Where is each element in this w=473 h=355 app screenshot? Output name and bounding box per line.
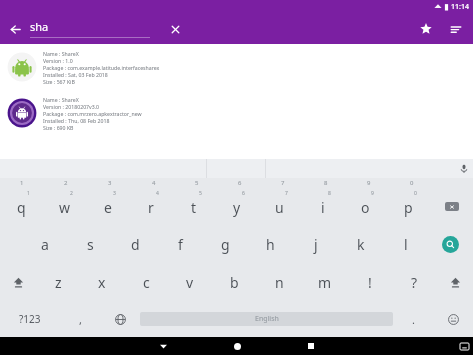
staticText: Size : 567 KiB bbox=[43, 78, 75, 85]
staticText: w bbox=[59, 198, 71, 217]
staticText: 6 bbox=[242, 190, 245, 197]
staticText: ? bbox=[411, 273, 418, 292]
staticText: 1 bbox=[27, 190, 30, 197]
staticText: a bbox=[41, 235, 49, 254]
button[interactable]: x bbox=[80, 263, 124, 301]
staticText: r bbox=[148, 198, 154, 217]
staticText: k bbox=[357, 235, 365, 254]
button[interactable]: v bbox=[168, 263, 212, 301]
button[interactable]: Emoji bbox=[433, 301, 473, 337]
button[interactable]: Search bbox=[428, 225, 473, 263]
button[interactable]: Back bbox=[0, 14, 30, 44]
button[interactable]: Recent apps bbox=[296, 337, 326, 355]
button[interactable]: f bbox=[158, 225, 203, 263]
staticText: 5 bbox=[195, 179, 199, 187]
staticText: z bbox=[55, 273, 62, 292]
staticText: p bbox=[404, 198, 413, 217]
button[interactable]: Favorites bbox=[411, 14, 441, 44]
staticText: 7 bbox=[281, 179, 285, 187]
button[interactable]: l bbox=[383, 225, 428, 263]
button[interactable]: Keyboard layout bbox=[455, 337, 473, 355]
staticText: Name : ShareX bbox=[43, 96, 79, 103]
staticText: 2 bbox=[64, 179, 68, 187]
button[interactable]: Backspace bbox=[430, 188, 473, 225]
staticText: m bbox=[318, 273, 332, 292]
button[interactable]: 7 bbox=[258, 188, 301, 225]
staticText: Version : 20180207v3.0 bbox=[43, 103, 100, 110]
staticText: u bbox=[275, 198, 284, 217]
staticText: 9 bbox=[367, 179, 371, 187]
button[interactable]: z bbox=[36, 263, 80, 301]
staticText: q bbox=[17, 198, 26, 217]
staticText: i bbox=[321, 198, 325, 217]
button[interactable]: a bbox=[22, 225, 68, 263]
button[interactable]: sha bbox=[30, 13, 160, 44]
staticText: , bbox=[79, 312, 82, 327]
button[interactable]: Name : ShareX bbox=[0, 90, 473, 136]
button[interactable]: 1 bbox=[0, 188, 43, 225]
staticText: 5 bbox=[199, 190, 202, 197]
button[interactable]: 3 bbox=[86, 188, 129, 225]
button[interactable]: Change language bbox=[100, 301, 140, 337]
staticText: English bbox=[255, 314, 279, 324]
staticText: v bbox=[186, 273, 194, 292]
button[interactable]: 5 bbox=[172, 188, 215, 225]
staticText: 8 bbox=[328, 190, 331, 197]
staticText: y bbox=[233, 198, 241, 217]
button[interactable]: b bbox=[212, 263, 257, 301]
staticText: x bbox=[98, 273, 106, 292]
button[interactable]: 9 bbox=[344, 188, 387, 225]
button[interactable]: c bbox=[124, 263, 168, 301]
button[interactable]: m bbox=[302, 263, 347, 301]
staticText: b bbox=[230, 273, 239, 292]
staticText: 0 bbox=[414, 190, 417, 197]
button[interactable]: d bbox=[113, 225, 158, 263]
staticText: 4 bbox=[156, 190, 159, 197]
button[interactable]: h bbox=[248, 225, 293, 263]
staticText: s bbox=[87, 235, 94, 254]
staticText: 1 bbox=[20, 179, 24, 187]
button[interactable]: Name : ShareX bbox=[0, 44, 473, 90]
button[interactable]: Shift bbox=[437, 263, 473, 301]
button[interactable]: 8 bbox=[301, 188, 344, 225]
staticText: Name : ShareX bbox=[43, 50, 79, 57]
staticText: c bbox=[143, 273, 150, 292]
button[interactable]: , bbox=[60, 301, 100, 337]
button[interactable]: . bbox=[393, 301, 433, 337]
button[interactable]: Voice input bbox=[454, 159, 473, 178]
staticText: 6 bbox=[238, 179, 242, 187]
staticText: l bbox=[404, 235, 408, 254]
staticText: 11:14 bbox=[451, 2, 469, 12]
button[interactable]: English bbox=[140, 312, 393, 326]
button[interactable]: Home bbox=[222, 337, 252, 355]
staticText: 3 bbox=[113, 190, 116, 197]
button[interactable]: n bbox=[257, 263, 302, 301]
button[interactable]: ?123 bbox=[0, 301, 60, 337]
button[interactable]: k bbox=[338, 225, 383, 263]
button[interactable]: 4 bbox=[129, 188, 172, 225]
button[interactable]: Clear search bbox=[160, 14, 190, 44]
staticText: d bbox=[131, 235, 140, 254]
staticText: n bbox=[275, 273, 284, 292]
button[interactable]: g bbox=[203, 225, 248, 263]
button[interactable]: ! bbox=[347, 263, 392, 301]
staticText: Size : 690 KB bbox=[43, 124, 74, 131]
button[interactable]: 0 bbox=[387, 188, 430, 225]
staticText: 3 bbox=[108, 179, 112, 187]
staticText: Installed : Thu, 08 Feb 2018 bbox=[43, 117, 110, 124]
button[interactable]: 2 bbox=[43, 188, 86, 225]
staticText: Package : com.example.latitude.interface… bbox=[43, 64, 160, 71]
staticText: Installed : Sat, 03 Feb 2018 bbox=[43, 71, 108, 78]
staticText: Package : com.mrzero.apkextractor_new bbox=[43, 110, 142, 117]
button[interactable]: s bbox=[68, 225, 113, 263]
button[interactable]: ? bbox=[392, 263, 437, 301]
staticText: 2 bbox=[70, 190, 73, 197]
button[interactable]: Shift bbox=[0, 263, 36, 301]
staticText: Version : 1.0 bbox=[43, 57, 73, 64]
staticText: 0 bbox=[410, 179, 414, 187]
button[interactable]: 6 bbox=[215, 188, 258, 225]
staticText: ?123 bbox=[19, 312, 41, 326]
button[interactable]: Filter bbox=[441, 14, 471, 44]
button[interactable]: j bbox=[293, 225, 338, 263]
button[interactable]: Back bbox=[148, 337, 178, 355]
